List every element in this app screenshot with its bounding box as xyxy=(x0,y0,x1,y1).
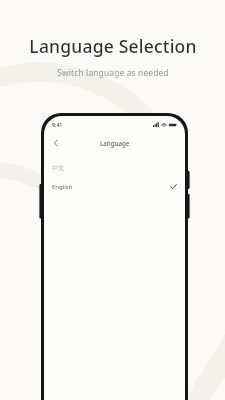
staticText: Switch language as needed xyxy=(57,67,169,79)
staticText: English xyxy=(52,183,73,191)
staticText: Language xyxy=(100,139,130,147)
button[interactable]: Back xyxy=(48,135,64,151)
staticText: 中文 xyxy=(52,164,64,172)
button[interactable]: 中文 xyxy=(44,158,185,177)
staticText: Language Selection xyxy=(29,34,197,58)
staticText: 9:41 xyxy=(52,121,63,128)
button[interactable]: English xyxy=(44,177,185,196)
